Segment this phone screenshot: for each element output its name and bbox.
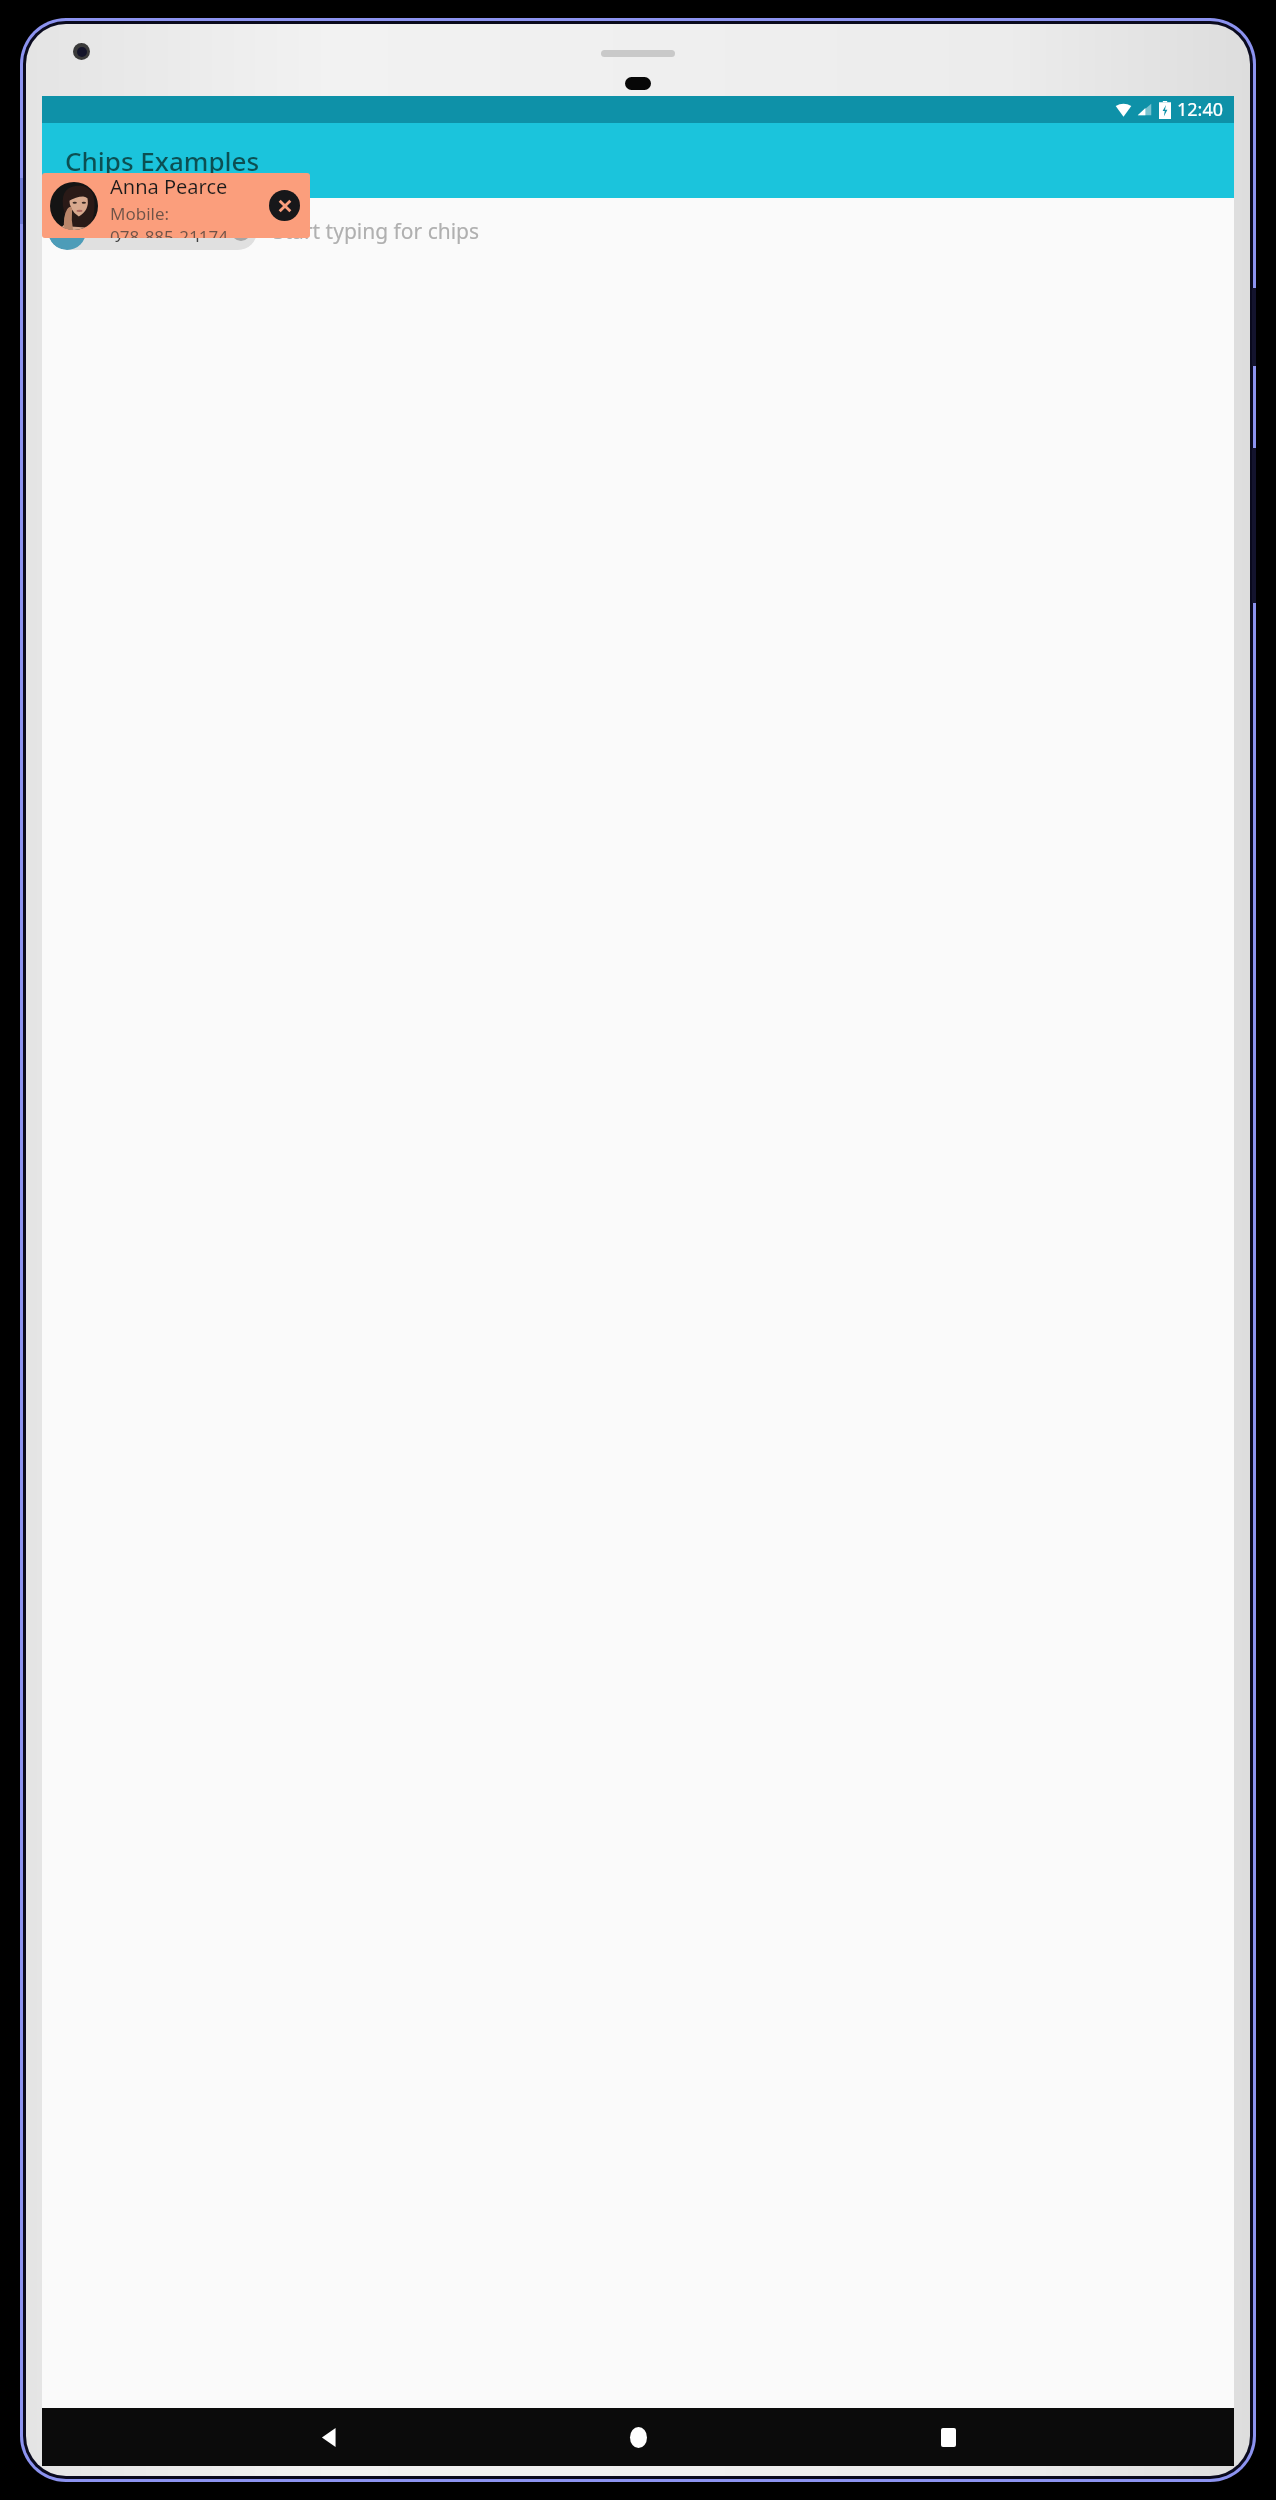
button[interactable]: Remove Anna Pearce [269,190,300,221]
button[interactable]: Back [306,2414,352,2460]
staticText: 12:40 [1177,97,1224,122]
staticText: Mobile: 078-885-21174 [110,202,269,238]
button[interactable]: Home [615,2414,661,2460]
staticText: Start typing for chips [273,217,480,246]
staticText: A [62,220,73,243]
button[interactable]: A [48,212,257,250]
staticText: Anna Pearce [110,173,228,200]
button[interactable]: Remove chip [231,221,251,241]
button[interactable]: Anna Pearce [42,173,310,238]
button[interactable]: Recent apps [925,2414,971,2460]
staticText: AnyKindOfInput [94,220,223,243]
staticText: Chips Examples [65,143,260,178]
